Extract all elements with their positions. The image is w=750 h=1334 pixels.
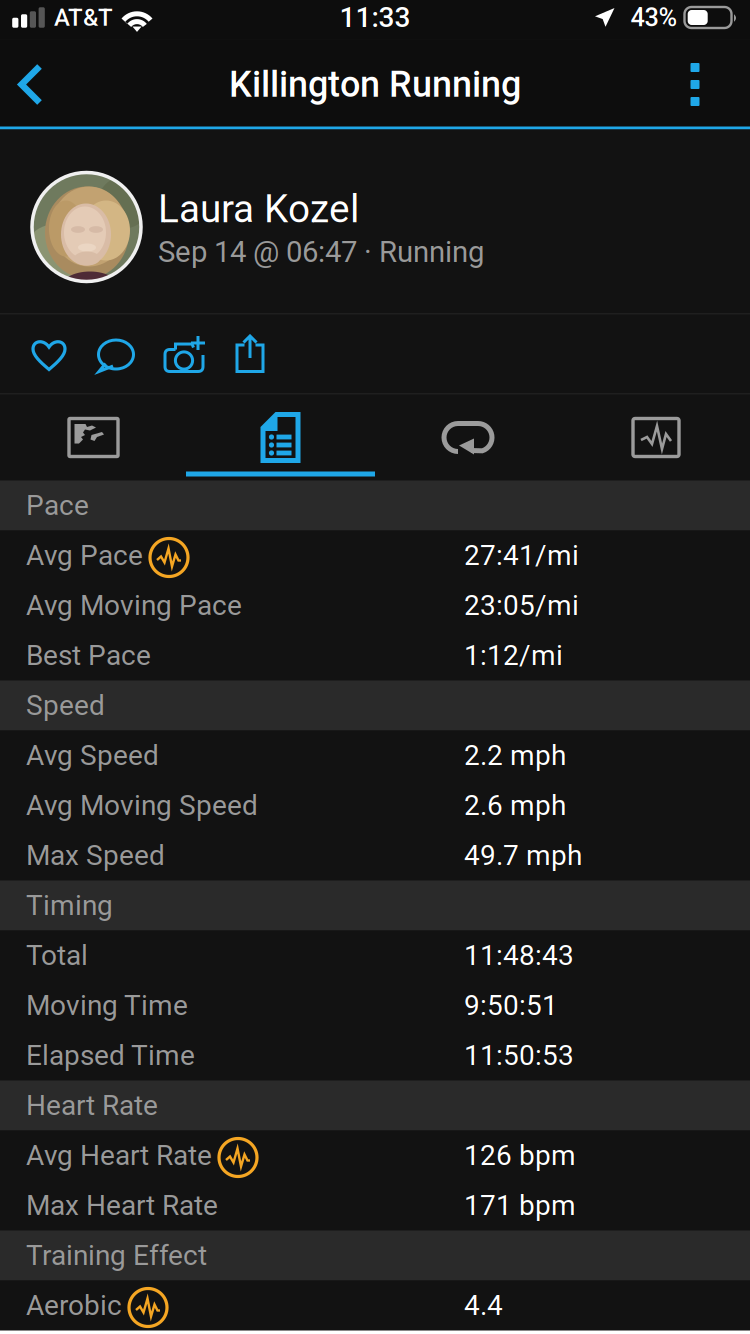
staticText: Max Speed — [26, 839, 165, 872]
staticText: Avg Pace — [26, 539, 143, 572]
staticText: 11:50:53 — [464, 1039, 574, 1072]
staticText: Sep 14 @ 06:47 · Running — [158, 235, 484, 269]
staticText: Avg Heart Rate — [26, 1139, 212, 1172]
button[interactable]: Add photo — [150, 314, 221, 394]
staticText: AT&T — [54, 3, 113, 31]
staticText: Pace — [26, 489, 89, 522]
staticText: 43% — [630, 3, 677, 32]
staticText: Speed — [26, 689, 105, 722]
staticText: Total — [26, 939, 88, 972]
staticText: 49.7 mph — [464, 839, 582, 872]
staticText: Best Pace — [26, 639, 151, 672]
button[interactable]: Like — [16, 314, 82, 394]
staticText: Killington Running — [229, 63, 521, 106]
staticText: 126 bpm — [464, 1139, 576, 1172]
staticText: 2.2 mph — [464, 739, 566, 772]
staticText: Training Effect — [26, 1239, 207, 1272]
staticText: 9:50:51 — [464, 989, 558, 1022]
staticText: Aerobic — [26, 1289, 122, 1322]
button[interactable]: Details — [187, 394, 374, 480]
button[interactable]: Back — [2, 39, 60, 129]
staticText: 27:41/mi — [464, 539, 579, 572]
button[interactable]: More options — [666, 39, 724, 129]
staticText: Avg Moving Pace — [26, 589, 242, 622]
staticText: 2.6 mph — [464, 789, 566, 822]
staticText: Laura Kozel — [158, 186, 359, 232]
staticText: 11:48:43 — [464, 939, 574, 972]
staticText: Elapsed Time — [26, 1039, 195, 1072]
staticText: Avg Moving Speed — [26, 789, 258, 822]
staticText: 11:33 — [339, 1, 410, 34]
staticText: 1:12/mi — [464, 639, 563, 672]
staticText: 4.4 — [464, 1289, 503, 1322]
button[interactable]: Map — [0, 393, 187, 481]
staticText: Timing — [26, 889, 113, 922]
button[interactable]: Laps — [374, 393, 562, 481]
button[interactable]: Charts — [562, 393, 750, 481]
staticText: Heart Rate — [26, 1089, 158, 1122]
staticText: Moving Time — [26, 989, 188, 1022]
staticText: 23:05/mi — [464, 589, 579, 622]
button[interactable]: Comment — [82, 314, 150, 394]
button[interactable]: Share — [221, 314, 279, 394]
staticText: 171 bpm — [464, 1189, 576, 1222]
staticText: Max Heart Rate — [26, 1189, 218, 1222]
staticText: Avg Speed — [26, 739, 159, 772]
